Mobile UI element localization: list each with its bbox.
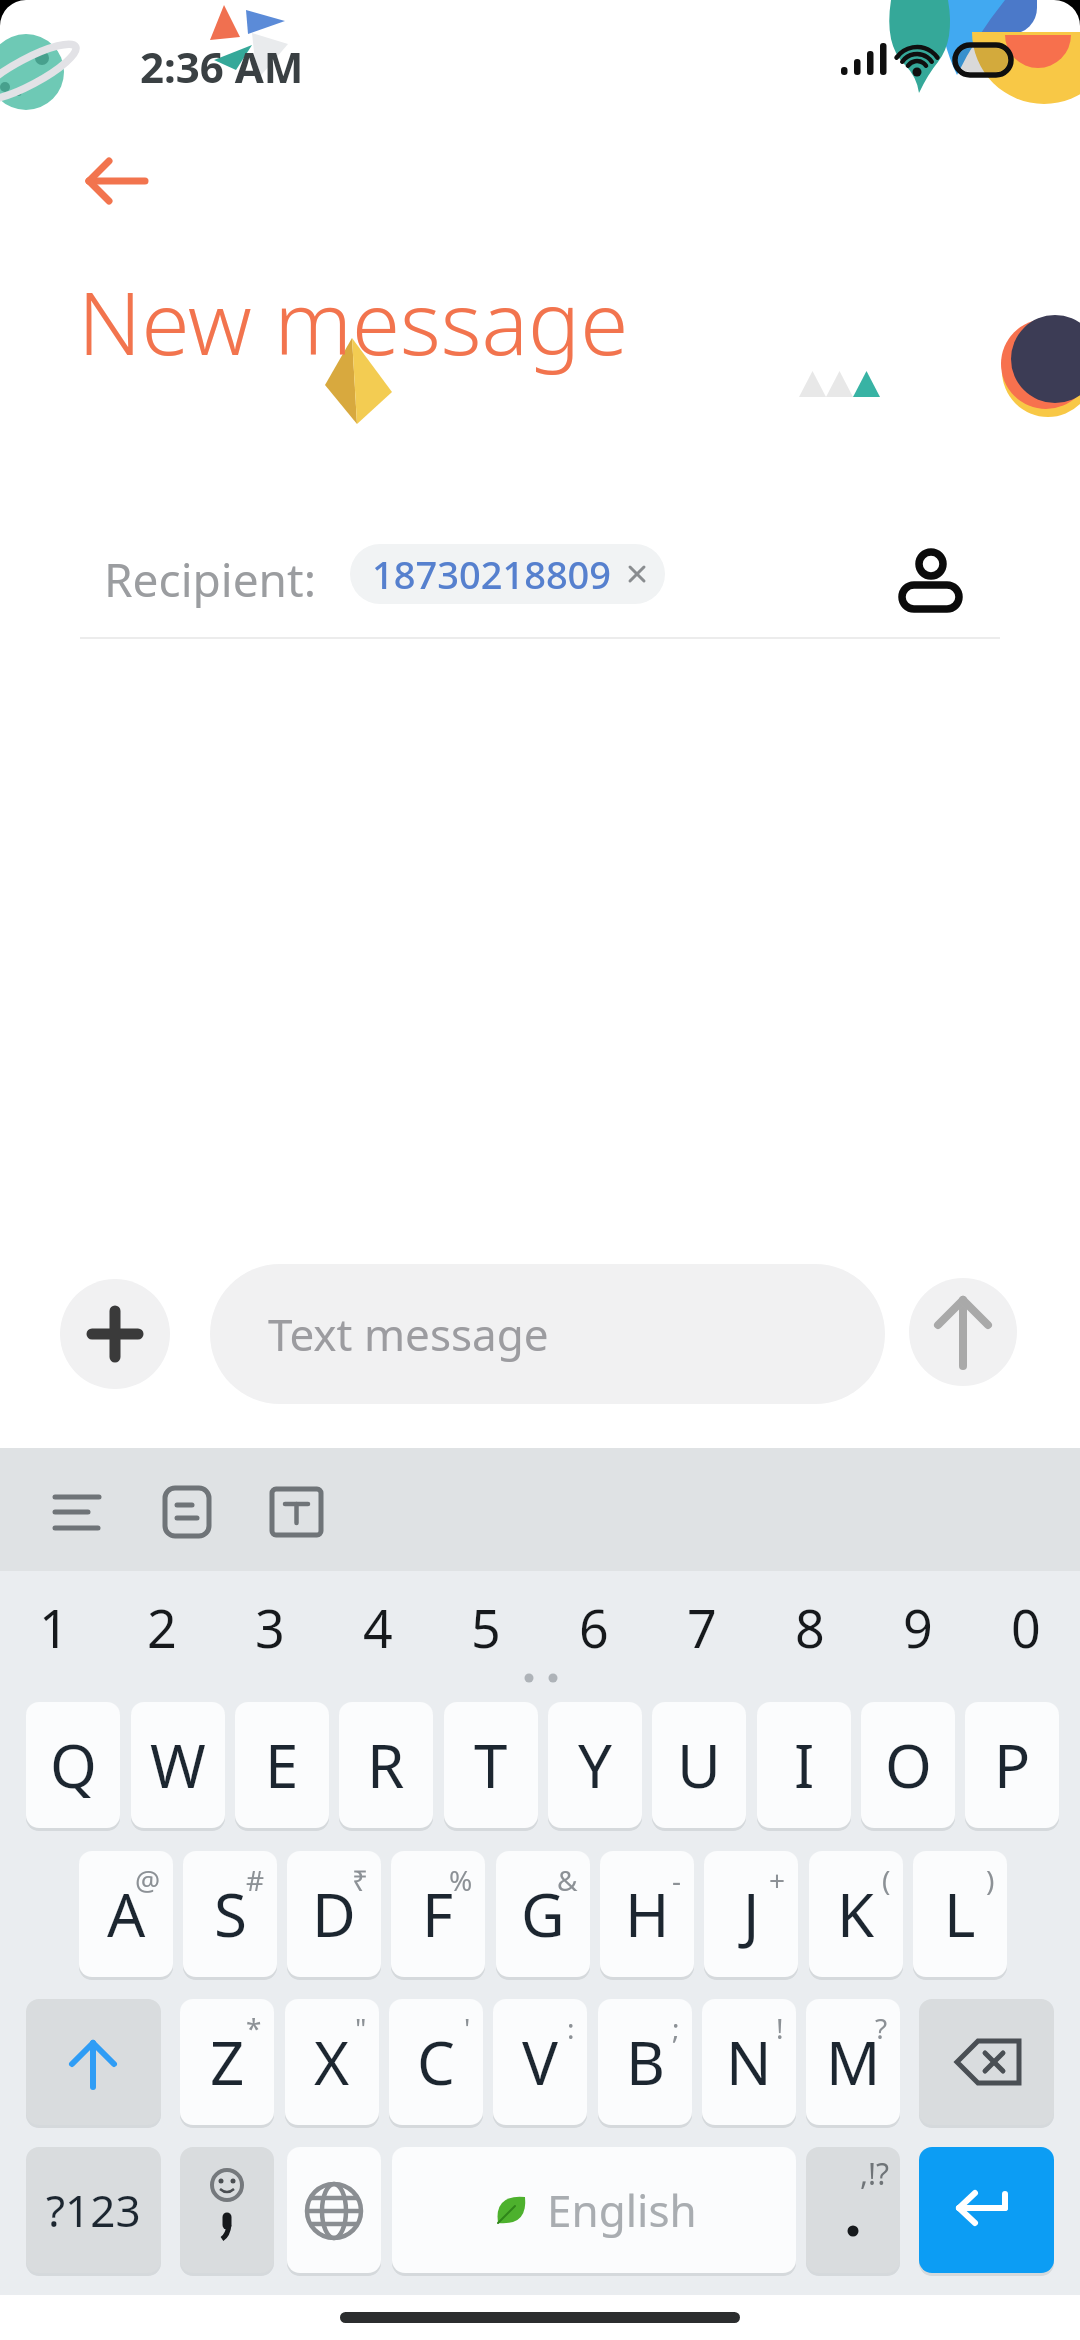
staticText: Recipient: bbox=[104, 548, 316, 611]
button[interactable]: I bbox=[757, 1702, 851, 1828]
staticText: Text message bbox=[268, 1304, 549, 1364]
staticText: 1 bbox=[39, 1592, 69, 1660]
staticText: 9 bbox=[903, 1592, 933, 1660]
staticText: U bbox=[677, 1724, 721, 1806]
button[interactable]: S bbox=[183, 1851, 277, 1977]
staticText: D bbox=[312, 1873, 356, 1955]
staticText: & bbox=[557, 1861, 578, 1899]
button[interactable]: M bbox=[806, 1999, 900, 2125]
staticText: 2 bbox=[147, 1592, 177, 1660]
button[interactable]: 18730218809 bbox=[350, 544, 665, 604]
staticText: ?123 bbox=[46, 2180, 141, 2240]
staticText: @ bbox=[135, 1861, 161, 1899]
button[interactable] bbox=[258, 1478, 332, 1546]
button[interactable] bbox=[150, 1478, 224, 1546]
staticText: ) bbox=[986, 1861, 995, 1899]
button[interactable]: B bbox=[598, 1999, 692, 2125]
button[interactable]: 6 bbox=[558, 1592, 630, 1660]
button[interactable]: 8 bbox=[774, 1592, 846, 1660]
button[interactable]: E bbox=[235, 1702, 329, 1828]
staticText: R bbox=[367, 1724, 405, 1806]
button[interactable]: R bbox=[339, 1702, 433, 1828]
button[interactable]: ,!? bbox=[806, 2147, 900, 2273]
button[interactable] bbox=[180, 2147, 274, 2273]
button[interactable]: O bbox=[861, 1702, 955, 1828]
staticText: S bbox=[214, 1873, 247, 1955]
button[interactable]: Y bbox=[548, 1702, 642, 1828]
button[interactable]: J bbox=[704, 1851, 798, 1977]
staticText: English bbox=[547, 2180, 697, 2240]
staticText: N bbox=[726, 2021, 772, 2103]
button[interactable]: W bbox=[131, 1702, 225, 1828]
staticText: ? bbox=[875, 2009, 888, 2047]
staticText: C bbox=[417, 2021, 455, 2103]
button[interactable]: 5 bbox=[450, 1592, 522, 1660]
staticText: - bbox=[672, 1861, 682, 1899]
button[interactable]: X bbox=[285, 1999, 379, 2125]
staticText: : bbox=[567, 2009, 575, 2047]
button[interactable] bbox=[919, 2147, 1054, 2273]
button[interactable]: P bbox=[965, 1702, 1059, 1828]
staticText: 2:36 AM bbox=[140, 38, 304, 95]
staticText: % bbox=[449, 1861, 473, 1899]
button[interactable] bbox=[909, 1278, 1017, 1386]
button[interactable]: K bbox=[809, 1851, 903, 1977]
staticText: X bbox=[314, 2021, 350, 2103]
button[interactable]: 1 bbox=[18, 1592, 90, 1660]
staticText: K bbox=[837, 1873, 875, 1955]
staticText: B bbox=[626, 2021, 665, 2103]
staticText: New message bbox=[78, 262, 629, 380]
button[interactable] bbox=[893, 536, 969, 616]
button[interactable] bbox=[60, 1279, 170, 1389]
staticText: 8 bbox=[795, 1592, 825, 1660]
button[interactable]: Text message bbox=[210, 1264, 885, 1404]
button[interactable]: N bbox=[702, 1999, 796, 2125]
staticText: " bbox=[355, 2009, 367, 2047]
staticText: ( bbox=[882, 1861, 891, 1899]
staticText: F bbox=[422, 1873, 454, 1955]
staticText: 0 bbox=[1011, 1592, 1041, 1660]
button[interactable]: ?123 bbox=[26, 2147, 161, 2273]
button[interactable]: English bbox=[392, 2147, 796, 2273]
staticText: P bbox=[994, 1724, 1031, 1806]
button[interactable]: D bbox=[287, 1851, 381, 1977]
button[interactable]: 9 bbox=[882, 1592, 954, 1660]
button[interactable]: L bbox=[913, 1851, 1007, 1977]
staticText: V bbox=[522, 2021, 558, 2103]
staticText: * bbox=[246, 2009, 262, 2047]
button[interactable] bbox=[26, 1999, 161, 2125]
button[interactable]: A bbox=[79, 1851, 173, 1977]
button[interactable]: H bbox=[600, 1851, 694, 1977]
button[interactable]: 4 bbox=[342, 1592, 414, 1660]
staticText: O bbox=[885, 1724, 932, 1806]
staticText: J bbox=[743, 1873, 760, 1955]
button[interactable]: T bbox=[444, 1702, 538, 1828]
staticText: 4 bbox=[363, 1592, 393, 1660]
staticText: H bbox=[625, 1873, 670, 1955]
staticText: ! bbox=[776, 2009, 784, 2047]
button[interactable]: V bbox=[493, 1999, 587, 2125]
button[interactable]: F bbox=[391, 1851, 485, 1977]
button[interactable]: 3 bbox=[234, 1592, 306, 1660]
button[interactable]: C bbox=[389, 1999, 483, 2125]
staticText: # bbox=[246, 1861, 265, 1899]
button[interactable]: G bbox=[496, 1851, 590, 1977]
button[interactable] bbox=[40, 1478, 114, 1546]
staticText: L bbox=[944, 1873, 976, 1955]
button[interactable] bbox=[70, 142, 160, 218]
button[interactable]: U bbox=[652, 1702, 746, 1828]
staticText: 18730218809 bbox=[372, 548, 612, 600]
button[interactable] bbox=[919, 1999, 1054, 2125]
staticText: E bbox=[265, 1724, 299, 1806]
staticText: 7 bbox=[687, 1592, 717, 1660]
button[interactable]: 2 bbox=[126, 1592, 198, 1660]
button[interactable]: 0 bbox=[990, 1592, 1062, 1660]
button[interactable]: Z bbox=[180, 1999, 274, 2125]
button[interactable]: Q bbox=[26, 1702, 120, 1828]
staticText: A bbox=[107, 1873, 146, 1955]
staticText: Q bbox=[50, 1724, 97, 1806]
staticText: Z bbox=[210, 2021, 245, 2103]
button[interactable] bbox=[287, 2147, 381, 2273]
button[interactable]: 7 bbox=[666, 1592, 738, 1660]
staticText: ' bbox=[464, 2009, 471, 2047]
